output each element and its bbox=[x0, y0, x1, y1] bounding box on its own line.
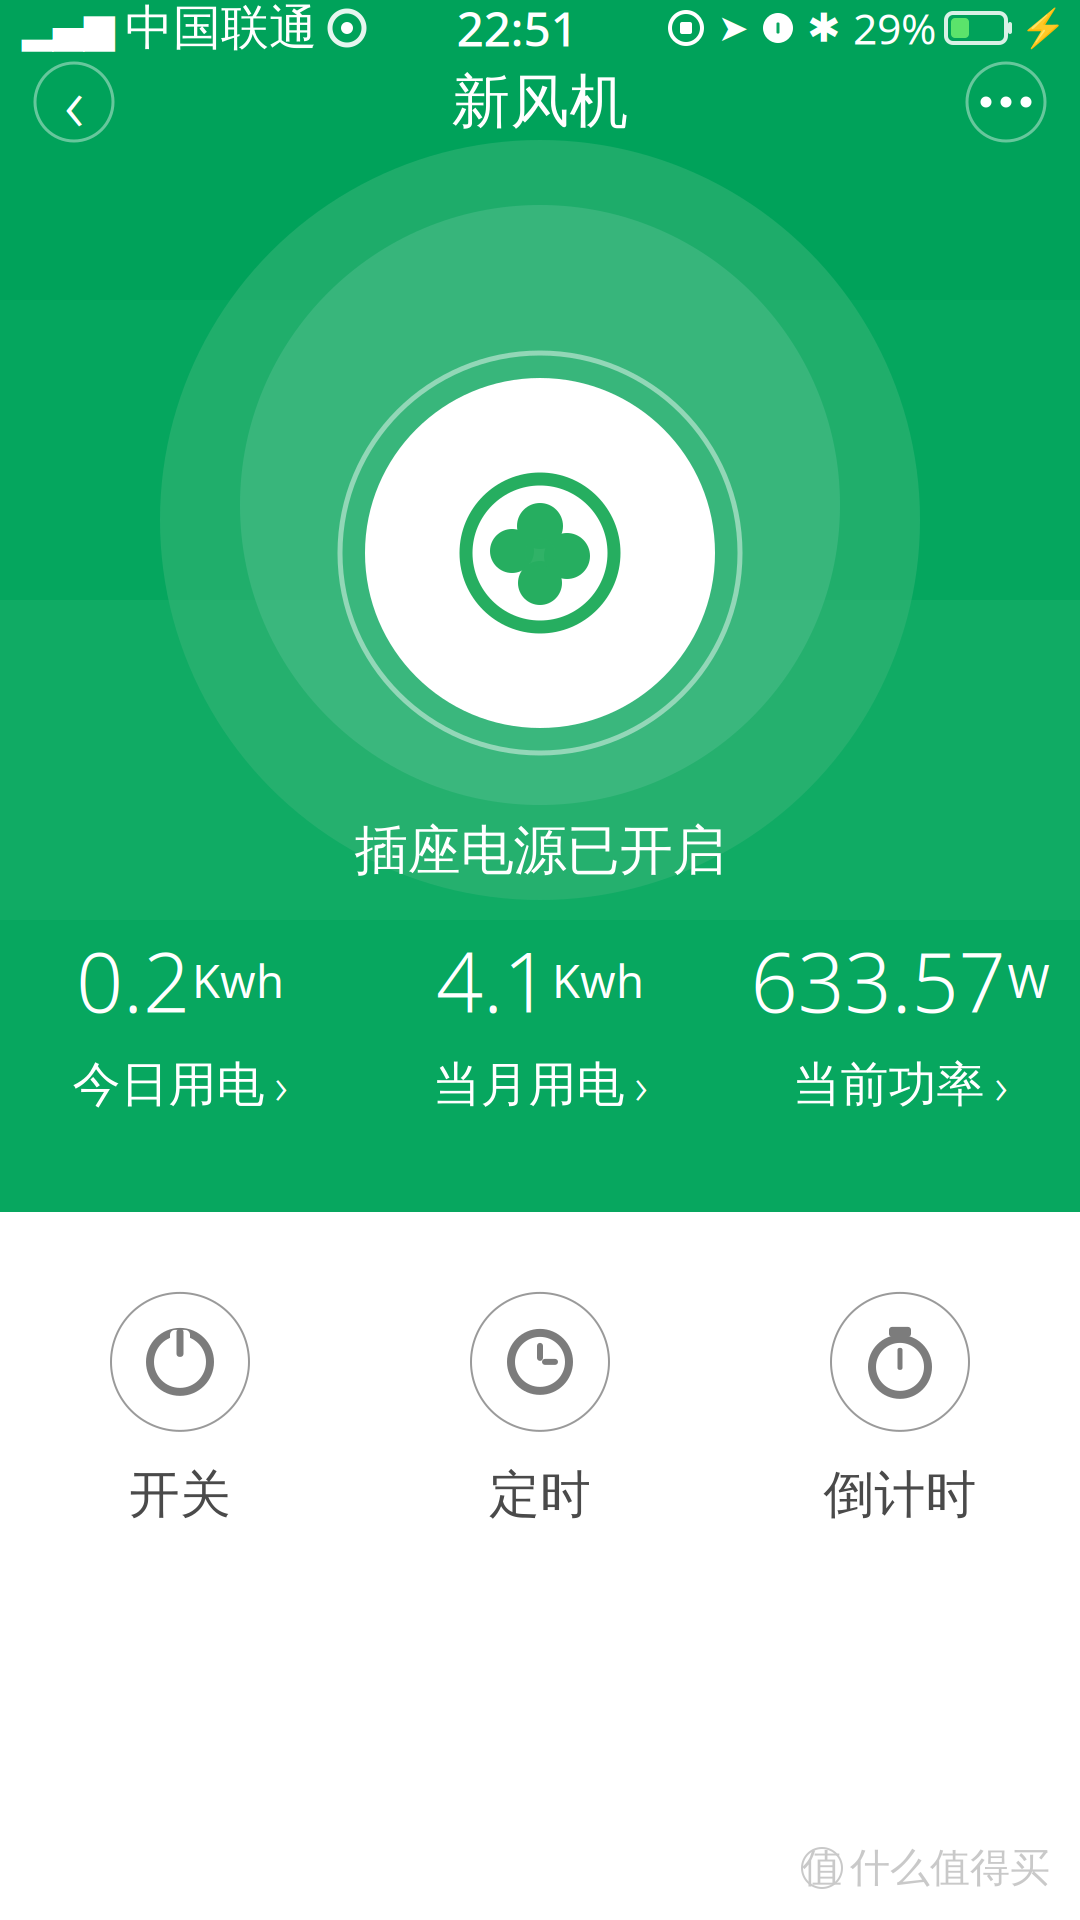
staticText: › bbox=[994, 1051, 1007, 1118]
staticText: › bbox=[274, 1051, 287, 1118]
staticText: 开关 bbox=[129, 1464, 231, 1526]
staticText: 当前功率 bbox=[792, 1055, 984, 1114]
button[interactable]: 0.2 bbox=[0, 932, 360, 1112]
staticText: Kwh bbox=[552, 950, 644, 1010]
staticText: 0.2 bbox=[76, 925, 190, 1035]
button[interactable]: 开关 bbox=[0, 1294, 360, 1524]
staticText: 定时 bbox=[489, 1464, 591, 1526]
staticText: ➤ bbox=[717, 7, 748, 49]
staticText: 什么值得买 bbox=[850, 1843, 1050, 1892]
button[interactable]: Power toggle bbox=[335, 348, 745, 758]
staticText: 插座电源已开启 bbox=[354, 818, 725, 883]
button[interactable]: 633.57 bbox=[720, 932, 1080, 1112]
button[interactable]: 定时 bbox=[360, 1294, 720, 1524]
staticText: ⚡ bbox=[1020, 7, 1066, 49]
button[interactable]: More options bbox=[966, 62, 1046, 142]
staticText: ‹ bbox=[64, 51, 84, 153]
staticText: 今日用电 bbox=[72, 1055, 264, 1114]
staticText: 倒计时 bbox=[823, 1464, 976, 1526]
staticText: ✱ bbox=[807, 5, 841, 51]
button[interactable]: Back bbox=[34, 62, 114, 142]
staticText: 29% bbox=[853, 0, 936, 56]
staticText: 新风机 bbox=[451, 66, 628, 138]
staticText: 22:51 bbox=[456, 0, 577, 60]
staticText: 值 bbox=[802, 1843, 842, 1892]
staticText: W bbox=[1007, 950, 1049, 1010]
staticText: 4.1 bbox=[436, 925, 550, 1035]
button[interactable]: 倒计时 bbox=[720, 1294, 1080, 1524]
staticText: 中国联通 bbox=[125, 0, 317, 57]
staticText: 633.57 bbox=[750, 925, 1005, 1035]
staticText: 当月用电 bbox=[432, 1055, 624, 1114]
staticText: Kwh bbox=[192, 950, 284, 1010]
staticText: ▂▄▆ bbox=[22, 5, 115, 51]
staticText: › bbox=[634, 1051, 647, 1118]
button[interactable]: 4.1 bbox=[360, 932, 720, 1112]
